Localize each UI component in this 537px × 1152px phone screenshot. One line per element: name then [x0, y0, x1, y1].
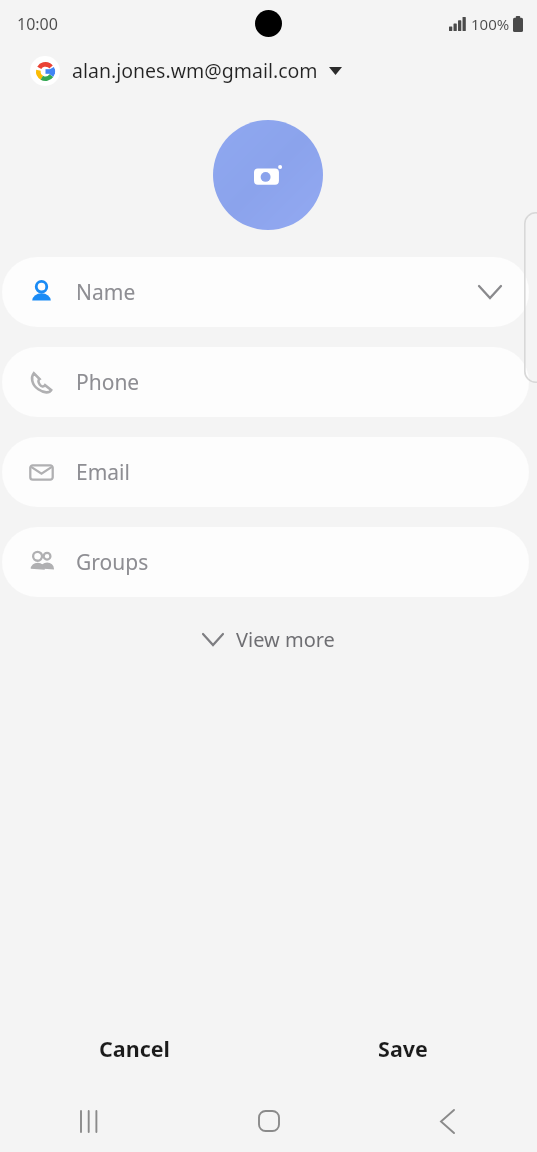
button[interactable]: Back	[358, 1090, 537, 1152]
button[interactable]: Expand name fields	[473, 275, 507, 309]
staticText: Groups	[76, 548, 149, 577]
staticText: Save	[378, 1034, 428, 1063]
button[interactable]: Email	[2, 437, 529, 507]
staticText: 100%	[471, 14, 510, 34]
staticText: View more	[236, 626, 335, 653]
button[interactable]: alan.jones.wm@gmail.com	[0, 47, 537, 94]
button[interactable]: Recent apps	[0, 1090, 179, 1152]
button[interactable]: Groups	[2, 527, 529, 597]
staticText: Cancel	[99, 1034, 170, 1063]
staticText: 10:00	[17, 13, 58, 35]
staticText: alan.jones.wm@gmail.com	[72, 57, 318, 84]
button[interactable]: Cancel	[0, 1006, 268, 1090]
button[interactable]: Phone	[2, 347, 529, 417]
button[interactable]: Home	[179, 1090, 358, 1152]
staticText: Email	[76, 458, 130, 487]
button[interactable]: Add contact photo	[213, 120, 323, 230]
button[interactable]: View more	[189, 616, 349, 663]
button[interactable]: Save	[268, 1006, 537, 1090]
button[interactable]: Name	[2, 257, 529, 327]
staticText: Name	[76, 278, 136, 307]
staticText: Phone	[76, 368, 140, 397]
